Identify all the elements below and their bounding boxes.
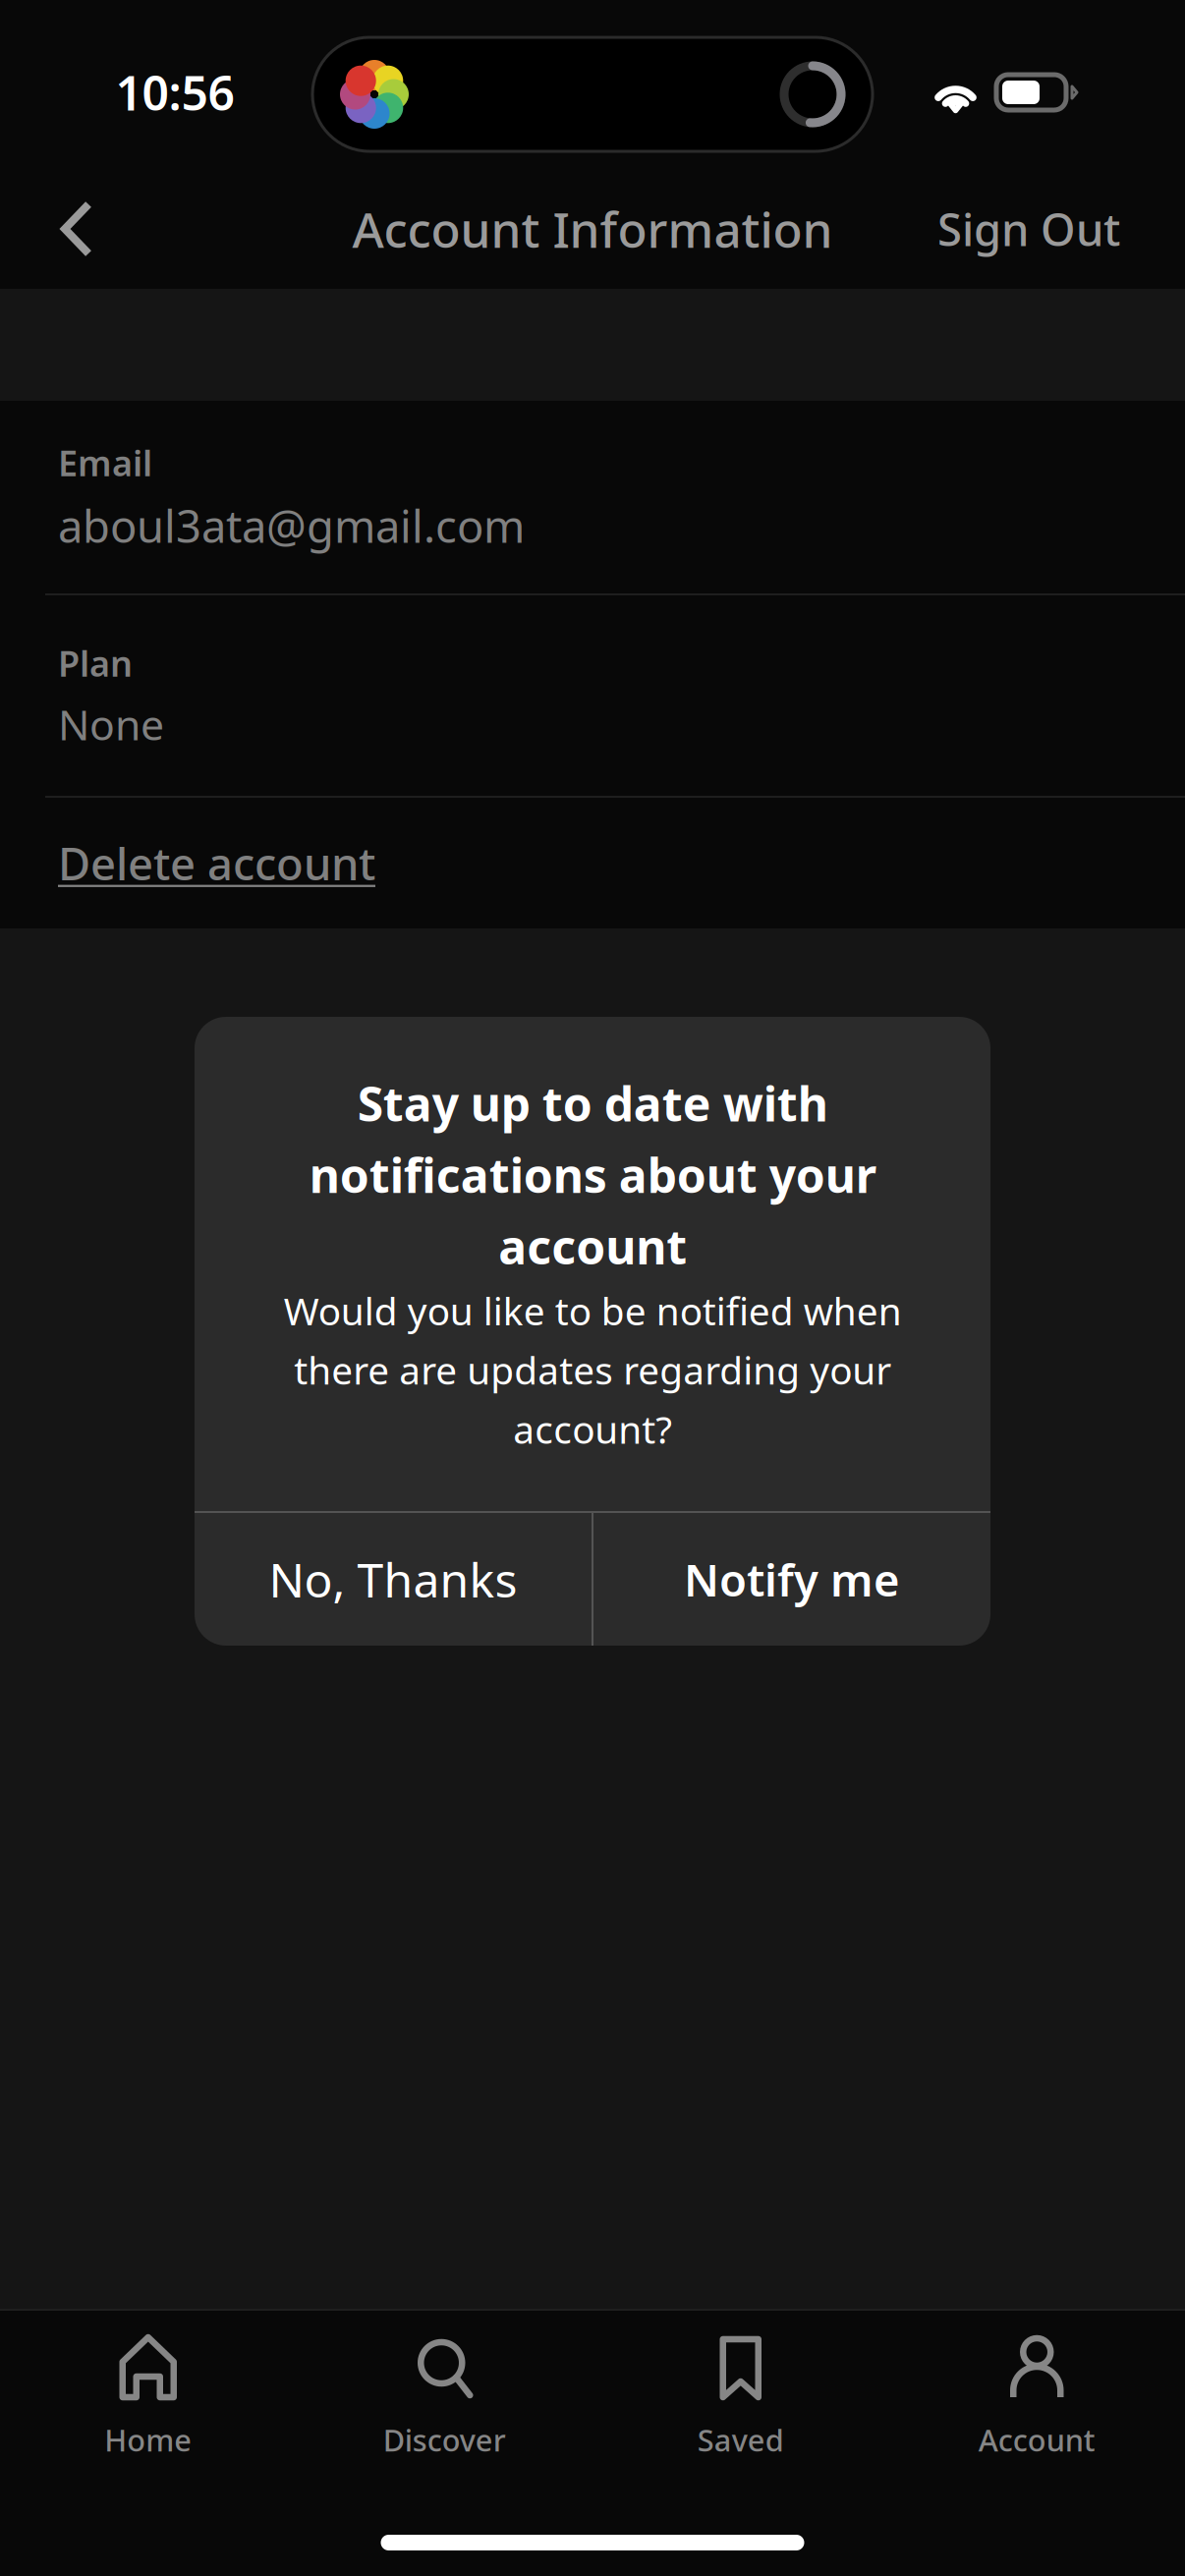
staticText: Would you like to be notified when there…	[283, 1285, 902, 1454]
staticText: Delete account	[58, 834, 375, 893]
button[interactable]: Delete account	[0, 798, 1185, 928]
staticText: No, Thanks	[269, 1548, 517, 1611]
button[interactable]: No, Thanks	[195, 1513, 592, 1646]
staticText: Account	[978, 2420, 1095, 2460]
button[interactable]: Notify me	[593, 1513, 990, 1646]
staticText: Plan	[58, 639, 133, 686]
button[interactable]: Discover	[296, 2332, 592, 2460]
staticText: 10:56	[115, 61, 234, 124]
staticText: Home	[104, 2420, 192, 2460]
button[interactable]: Sign Out	[898, 170, 1185, 288]
staticText: aboul3ata@gmail.com	[58, 496, 525, 555]
button[interactable]: Home	[0, 2332, 296, 2460]
staticText: Discover	[383, 2420, 506, 2460]
button[interactable]: Saved	[592, 2332, 889, 2460]
staticText: Notify me	[684, 1550, 900, 1609]
staticText: None	[58, 696, 164, 752]
button[interactable]: Back	[0, 171, 132, 287]
staticText: Account Information	[352, 197, 833, 261]
button[interactable]: Account	[889, 2332, 1185, 2460]
staticText: Saved	[697, 2420, 784, 2460]
staticText: Email	[58, 439, 152, 486]
staticText: Stay up to date with notifications about…	[309, 1072, 876, 1277]
staticText: Sign Out	[937, 199, 1120, 258]
